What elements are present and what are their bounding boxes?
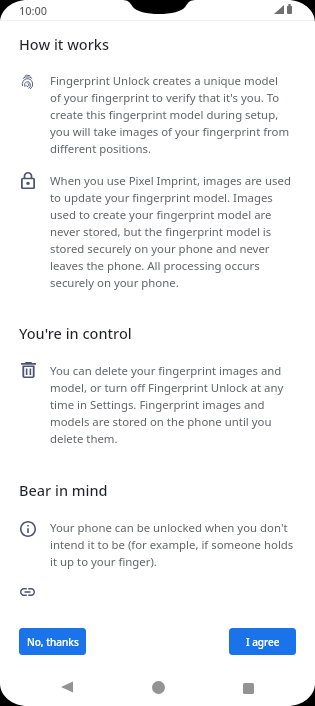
staticText: Bear in mind — [19, 480, 108, 500]
staticText: When you use Pixel Imprint, images are u… — [50, 172, 291, 291]
staticText: Fingerprint Unlock creates a unique mode… — [50, 72, 291, 157]
staticText: How it works — [19, 34, 109, 54]
staticText: I agree — [246, 635, 280, 649]
staticText: No, thanks — [27, 635, 79, 649]
button[interactable]: Back — [54, 674, 80, 700]
button[interactable]: No, thanks — [19, 628, 86, 655]
button[interactable]: Home — [145, 674, 171, 700]
staticText: You're in control — [19, 323, 132, 343]
staticText: You can delete your fingerprint images a… — [50, 362, 291, 447]
button[interactable]: I agree — [229, 628, 296, 655]
staticText: 10:00 — [19, 3, 48, 18]
button[interactable]: Recent apps — [235, 675, 261, 701]
staticText: Your phone can be unlocked when you don'… — [50, 519, 296, 570]
